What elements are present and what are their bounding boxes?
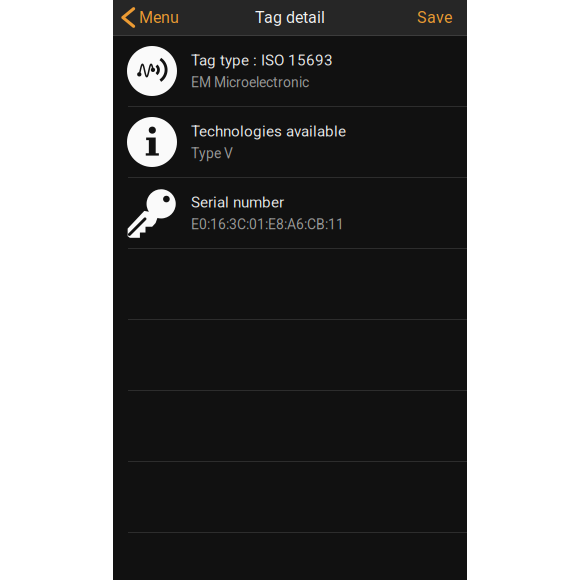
staticText: E0:16:3C:01:E8:A6:CB:11 <box>191 216 344 233</box>
button[interactable]: Menu <box>113 0 185 35</box>
staticText: Save <box>417 8 452 27</box>
staticText: Tag type : ISO 15693 <box>191 51 333 69</box>
button[interactable]: Serial number <box>113 178 467 249</box>
button[interactable]: Technologies available <box>113 107 467 178</box>
staticText: Type V <box>191 145 233 162</box>
button[interactable]: Save <box>409 0 467 35</box>
staticText: Menu <box>139 8 179 27</box>
button[interactable]: Tag type : ISO 15693 <box>113 36 467 107</box>
staticText: Serial number <box>191 193 284 211</box>
staticText: Technologies available <box>191 122 346 140</box>
staticText: EM Microelectronic <box>191 74 309 91</box>
staticText: Tag detail <box>255 8 325 27</box>
